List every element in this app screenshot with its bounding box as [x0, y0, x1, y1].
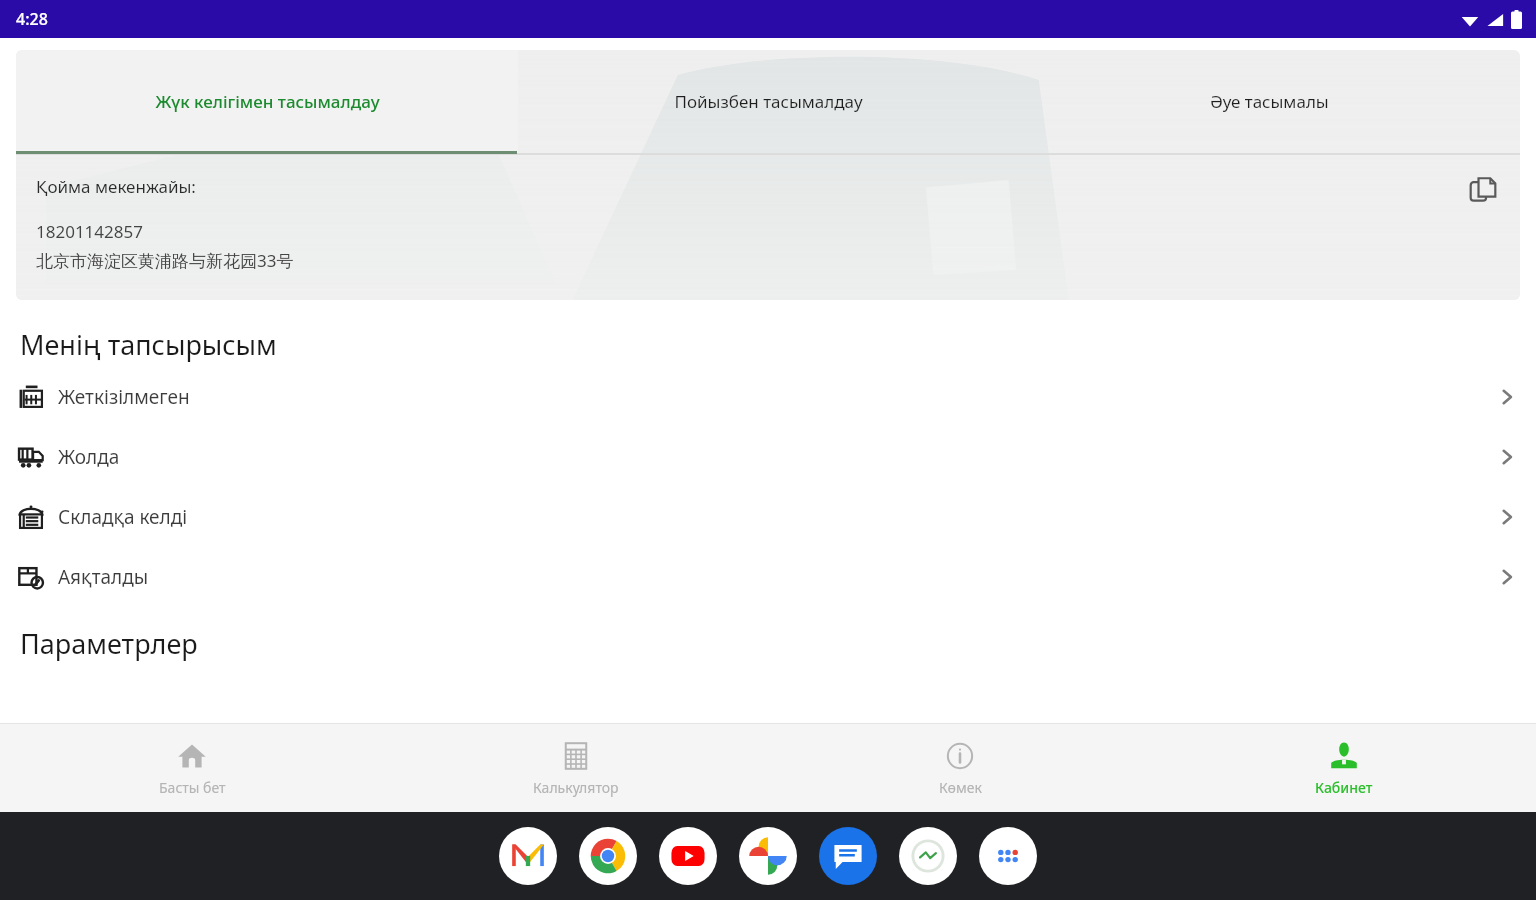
staticText: Жолда: [58, 444, 120, 470]
staticText: Менің тапсырысым: [20, 326, 277, 363]
staticText: Аяқталды: [58, 564, 149, 590]
button[interactable]: Жүк келігімен тасымалдау: [16, 50, 518, 153]
button[interactable]: App: [499, 827, 557, 885]
button[interactable]: Әуе тасымалы: [1019, 50, 1520, 153]
button[interactable]: Калькулятор: [384, 724, 768, 812]
staticText: Пойызбен тасымалдау: [674, 90, 863, 113]
button[interactable]: App: [659, 827, 717, 885]
button[interactable]: App: [899, 827, 957, 885]
button[interactable]: App: [979, 827, 1037, 885]
button[interactable]: Copy address: [1462, 169, 1504, 211]
staticText: Складқа келді: [58, 504, 188, 530]
button[interactable]: Көмек: [768, 724, 1152, 812]
button[interactable]: Жеткізілмеген: [0, 367, 1536, 427]
button[interactable]: App: [579, 827, 637, 885]
button[interactable]: Аяқталды: [0, 547, 1536, 607]
staticText: Параметрлер: [20, 625, 198, 662]
staticText: Жеткізілмеген: [58, 384, 190, 410]
button[interactable]: Кабинет: [1152, 724, 1536, 812]
button[interactable]: Складқа келді: [0, 487, 1536, 547]
staticText: Қойма мекенжайы:: [36, 175, 196, 198]
button[interactable]: Жолда: [0, 427, 1536, 487]
button[interactable]: App: [739, 827, 797, 885]
staticText: Калькулятор: [533, 778, 619, 797]
staticText: Көмек: [939, 778, 982, 797]
button[interactable]: Пойызбен тасымалдау: [518, 50, 1019, 153]
button[interactable]: Басты бет: [0, 724, 384, 812]
staticText: Басты бет: [159, 778, 226, 797]
staticText: 北京市海淀区黄浦路与新花园33号: [36, 249, 294, 272]
staticText: Жүк келігімен тасымалдау: [155, 90, 380, 113]
staticText: Кабинет: [1315, 778, 1373, 797]
staticText: 4:28: [16, 8, 48, 30]
button[interactable]: App: [819, 827, 877, 885]
staticText: 18201142857: [36, 220, 143, 243]
staticText: Әуе тасымалы: [1210, 90, 1329, 113]
